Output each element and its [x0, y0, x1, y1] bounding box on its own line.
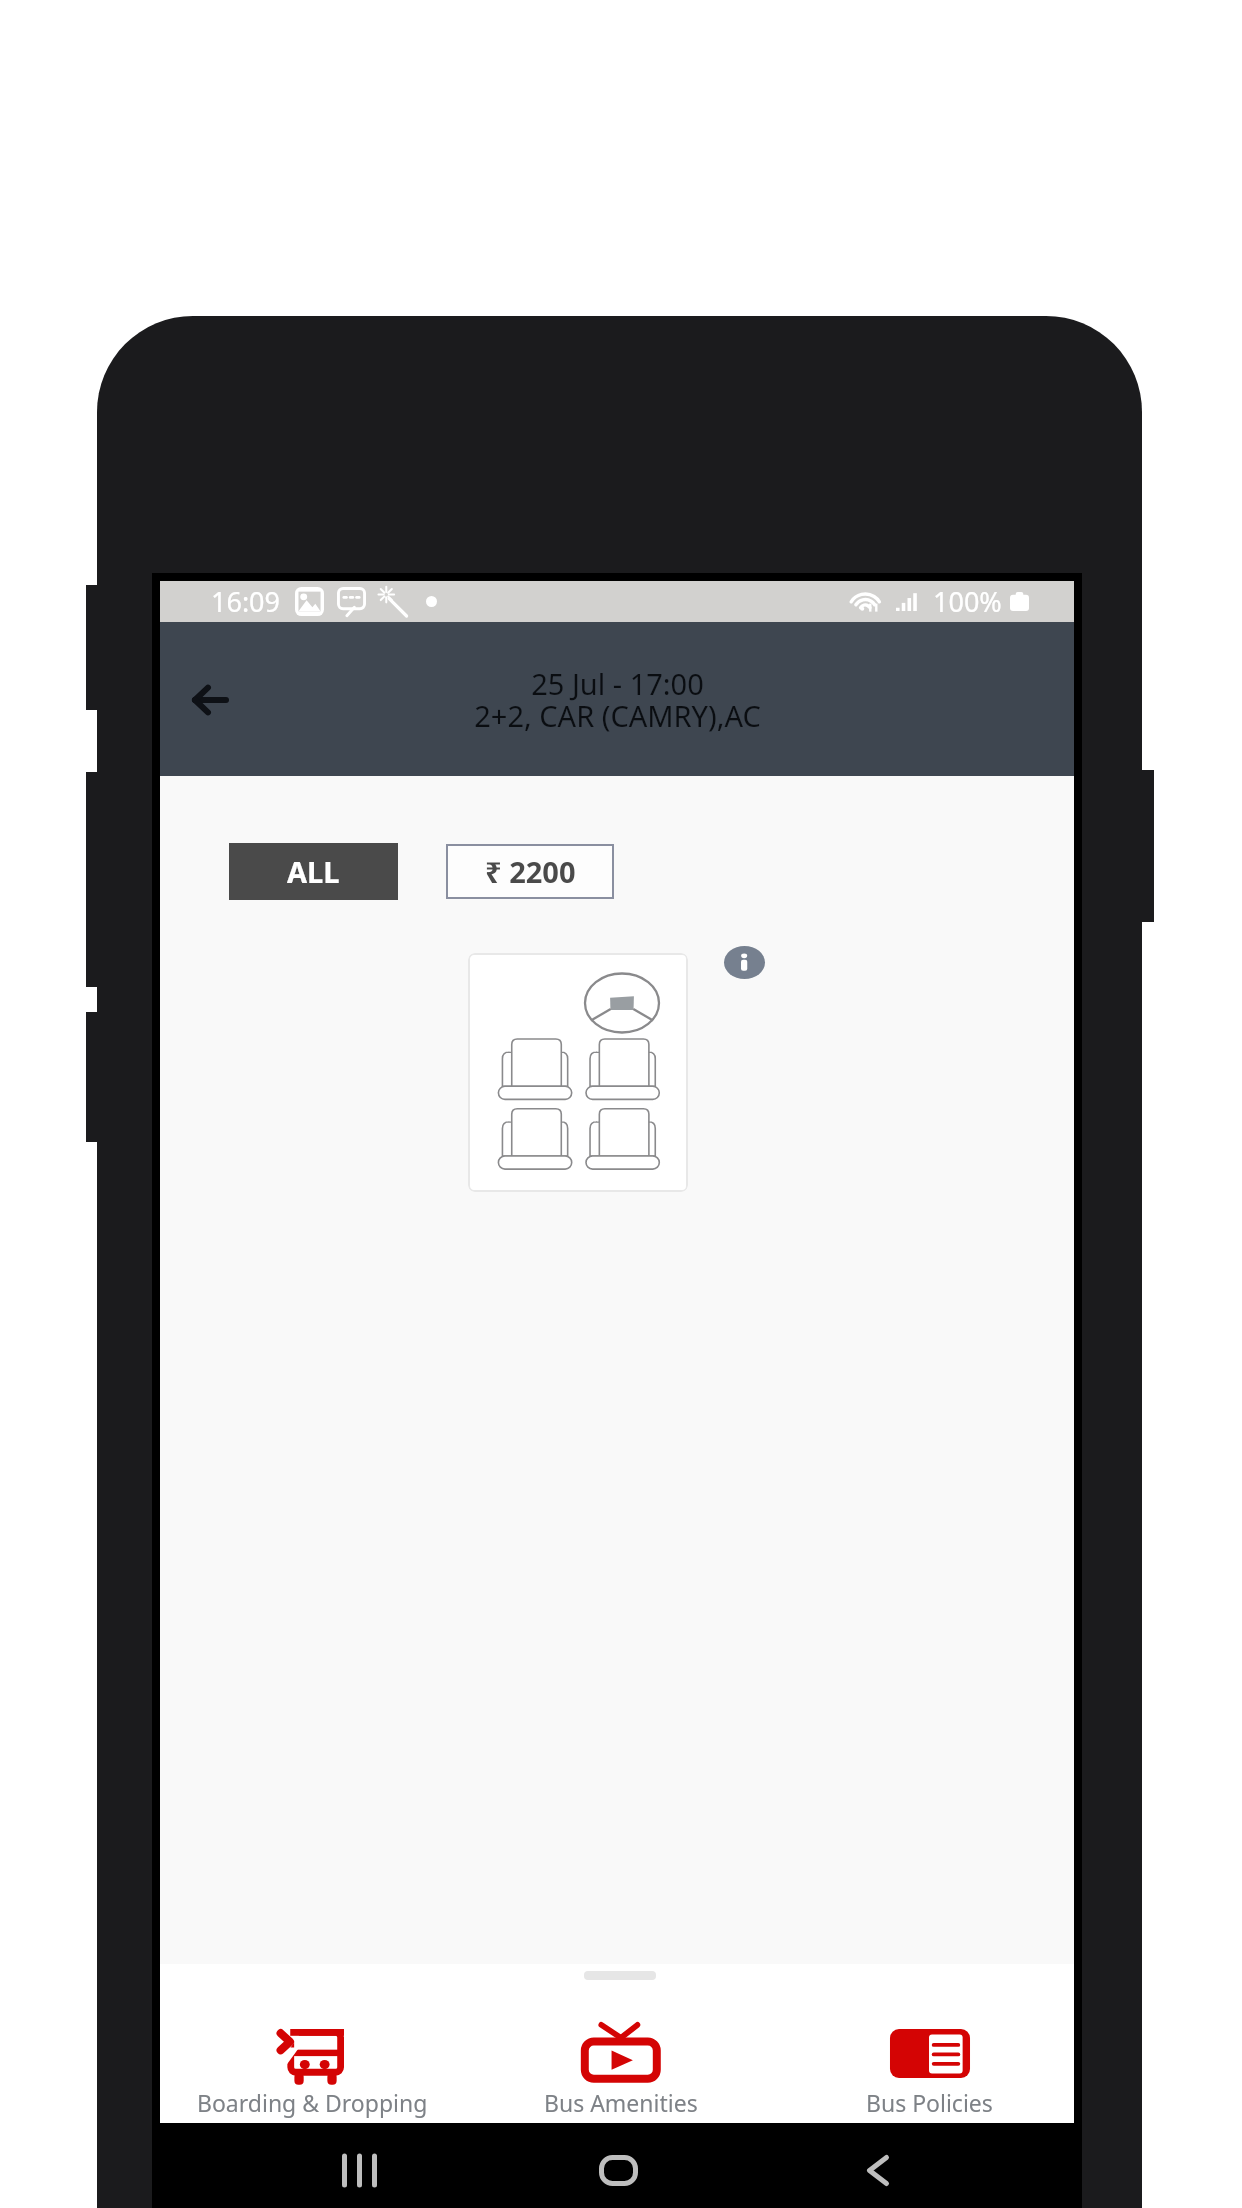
button[interactable]: Recents: [329, 2140, 389, 2200]
button[interactable]: ₹ 2200: [446, 844, 614, 899]
staticText: Bus Policies: [866, 2087, 993, 2118]
button[interactable]: Back: [178, 668, 242, 732]
button[interactable]: Information: [724, 946, 765, 979]
staticText: 16:09: [211, 583, 281, 620]
button[interactable]: Back: [848, 2140, 908, 2200]
button[interactable]: Bus Policies: [777, 1964, 1082, 2123]
button[interactable]: ALL: [229, 843, 398, 900]
staticText: 2+2, CAR (CAMRY),AC: [474, 696, 761, 735]
button[interactable]: Boarding & Dropping: [160, 1964, 464, 2123]
button[interactable]: Home: [588, 2140, 648, 2200]
staticText: Bus Amenities: [544, 2087, 698, 2118]
button[interactable]: Bus Amenities: [468, 1964, 773, 2123]
staticText: 100%: [933, 583, 1002, 620]
staticText: ₹ 2200: [485, 852, 576, 891]
staticText: Boarding & Dropping: [197, 2087, 428, 2118]
button[interactable]: [468, 953, 688, 1192]
staticText: 25 Jul - 17:00: [531, 664, 704, 703]
staticText: ALL: [287, 852, 340, 891]
